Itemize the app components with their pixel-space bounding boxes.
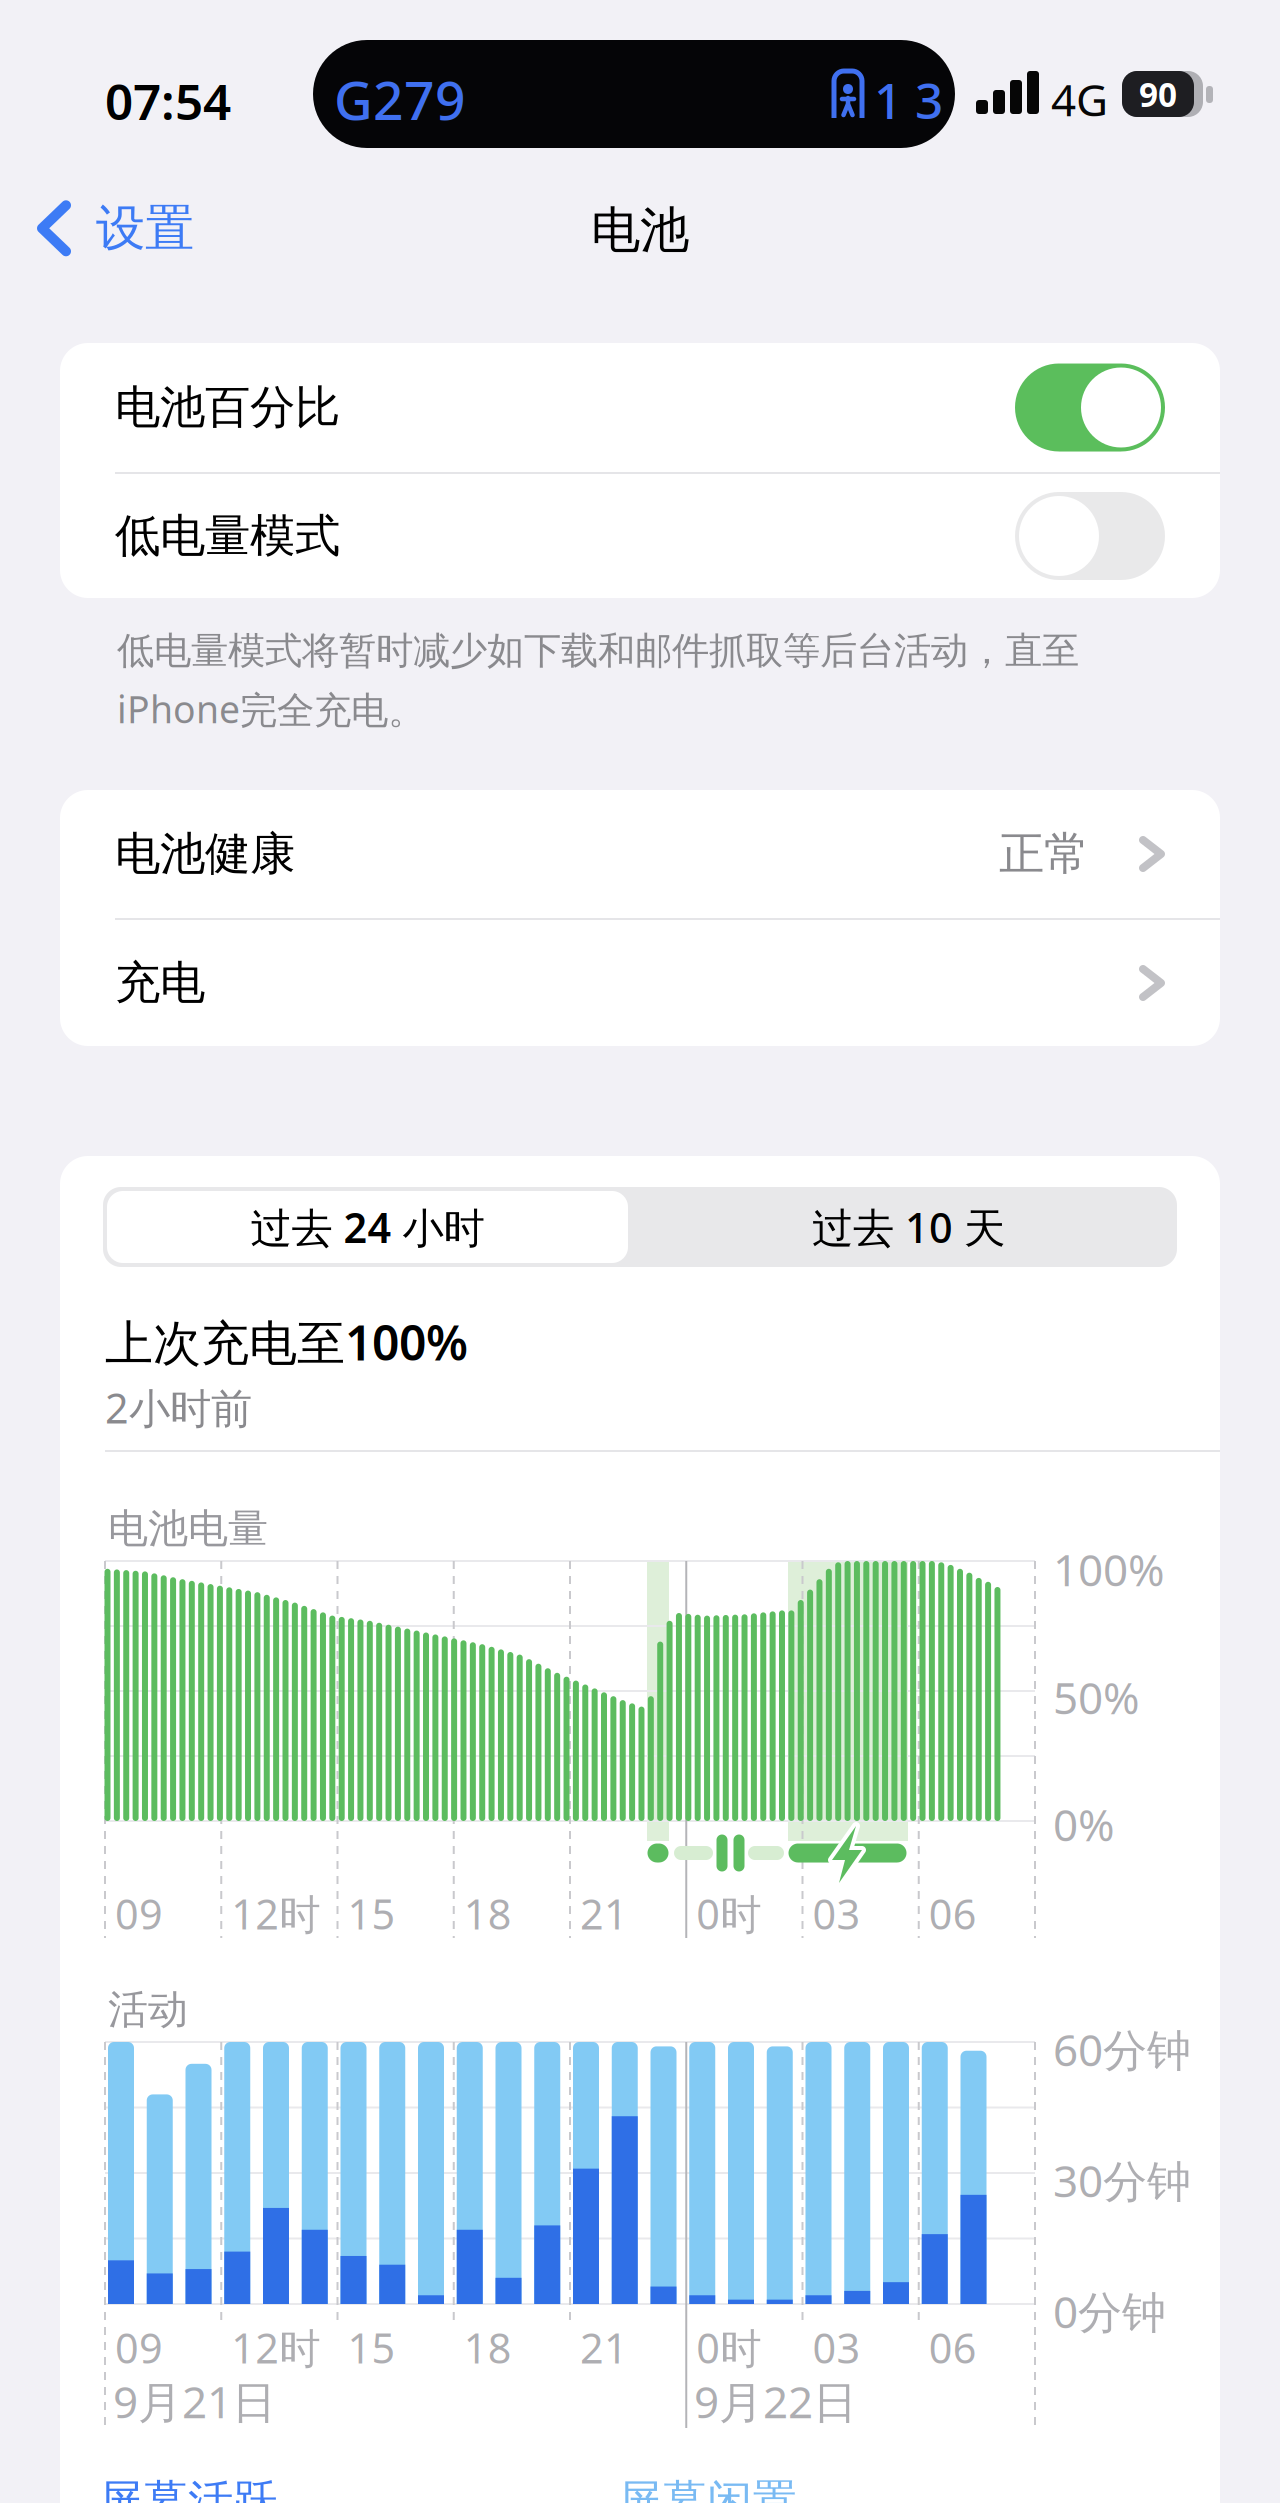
button[interactable]: 低电量模式 [60,474,1220,598]
button[interactable]: 电池健康 [60,790,1220,918]
staticText: iPhone完全充电。 [117,684,425,734]
staticText: 设置 [96,198,194,259]
staticText: 0时 [696,2320,761,2375]
staticText: 1 3 [874,67,943,132]
staticText: 电池健康 [115,826,295,882]
staticText: 电池电量 [108,1504,268,1553]
staticText: 12时 [231,1886,320,1941]
staticText: G279 [334,64,466,135]
staticText: 过去 10 天 [812,1200,1005,1254]
staticText: 03 [812,1886,860,1941]
staticText: 屏幕活跃 [98,2474,278,2503]
staticText: 电池 [591,200,689,261]
staticText: 0% [1053,1795,1115,1853]
button[interactable]: 低电量模式 [1015,492,1165,580]
staticText: 30分钟 [1053,2151,1191,2209]
staticText: 屏幕闲置 [617,2474,797,2503]
staticText: 过去 24 小时 [250,1200,484,1254]
staticText: 15 [347,1886,395,1941]
staticText: 21 [580,1886,628,1941]
button[interactable]: 电池百分比 [60,343,1220,472]
staticText: 09 [115,2320,163,2375]
button[interactable]: 屏幕活跃 [98,2474,278,2503]
staticText: 18 [464,1886,512,1941]
button[interactable]: 过去 24 小时 [107,1191,628,1263]
staticText: 07:54 [105,68,231,133]
staticText: 2小时前 [105,1380,252,1435]
button[interactable]: 过去 10 天 [648,1191,1169,1263]
staticText: 06 [929,1886,977,1941]
staticText: 0时 [696,1886,761,1941]
staticText: 100% [1053,1540,1165,1598]
staticText: 09 [115,1886,163,1941]
button[interactable]: 返回设置 [36,198,194,259]
staticText: 15 [347,2320,395,2375]
staticText: 03 [812,2320,860,2375]
staticText: 正常 [999,826,1089,882]
staticText: 电池百分比 [115,380,340,435]
staticText: 0分钟 [1053,2282,1166,2340]
staticText: 充电 [115,955,205,1011]
staticText: 9月22日 [694,2372,857,2430]
staticText: 低电量模式将暂时减少如下载和邮件抓取等后台活动，直至 [117,628,1079,674]
staticText: 60分钟 [1053,2020,1191,2078]
button[interactable]: 屏幕闲置 [617,2474,797,2503]
staticText: 18 [464,2320,512,2375]
staticText: 活动 [108,1985,188,2034]
staticText: 低电量模式 [115,508,340,564]
staticText: 06 [929,2320,977,2375]
staticText: 9月21日 [113,2372,276,2430]
staticText: 50% [1053,1668,1140,1726]
staticText: 90 [1139,72,1177,116]
staticText: 21 [580,2320,628,2375]
staticText: 上次充电至100% [105,1310,468,1374]
staticText: 12时 [231,2320,320,2375]
button[interactable]: 电池百分比 [1015,363,1165,451]
staticText: 4G [1051,70,1108,128]
button[interactable]: 充电 [60,920,1220,1046]
